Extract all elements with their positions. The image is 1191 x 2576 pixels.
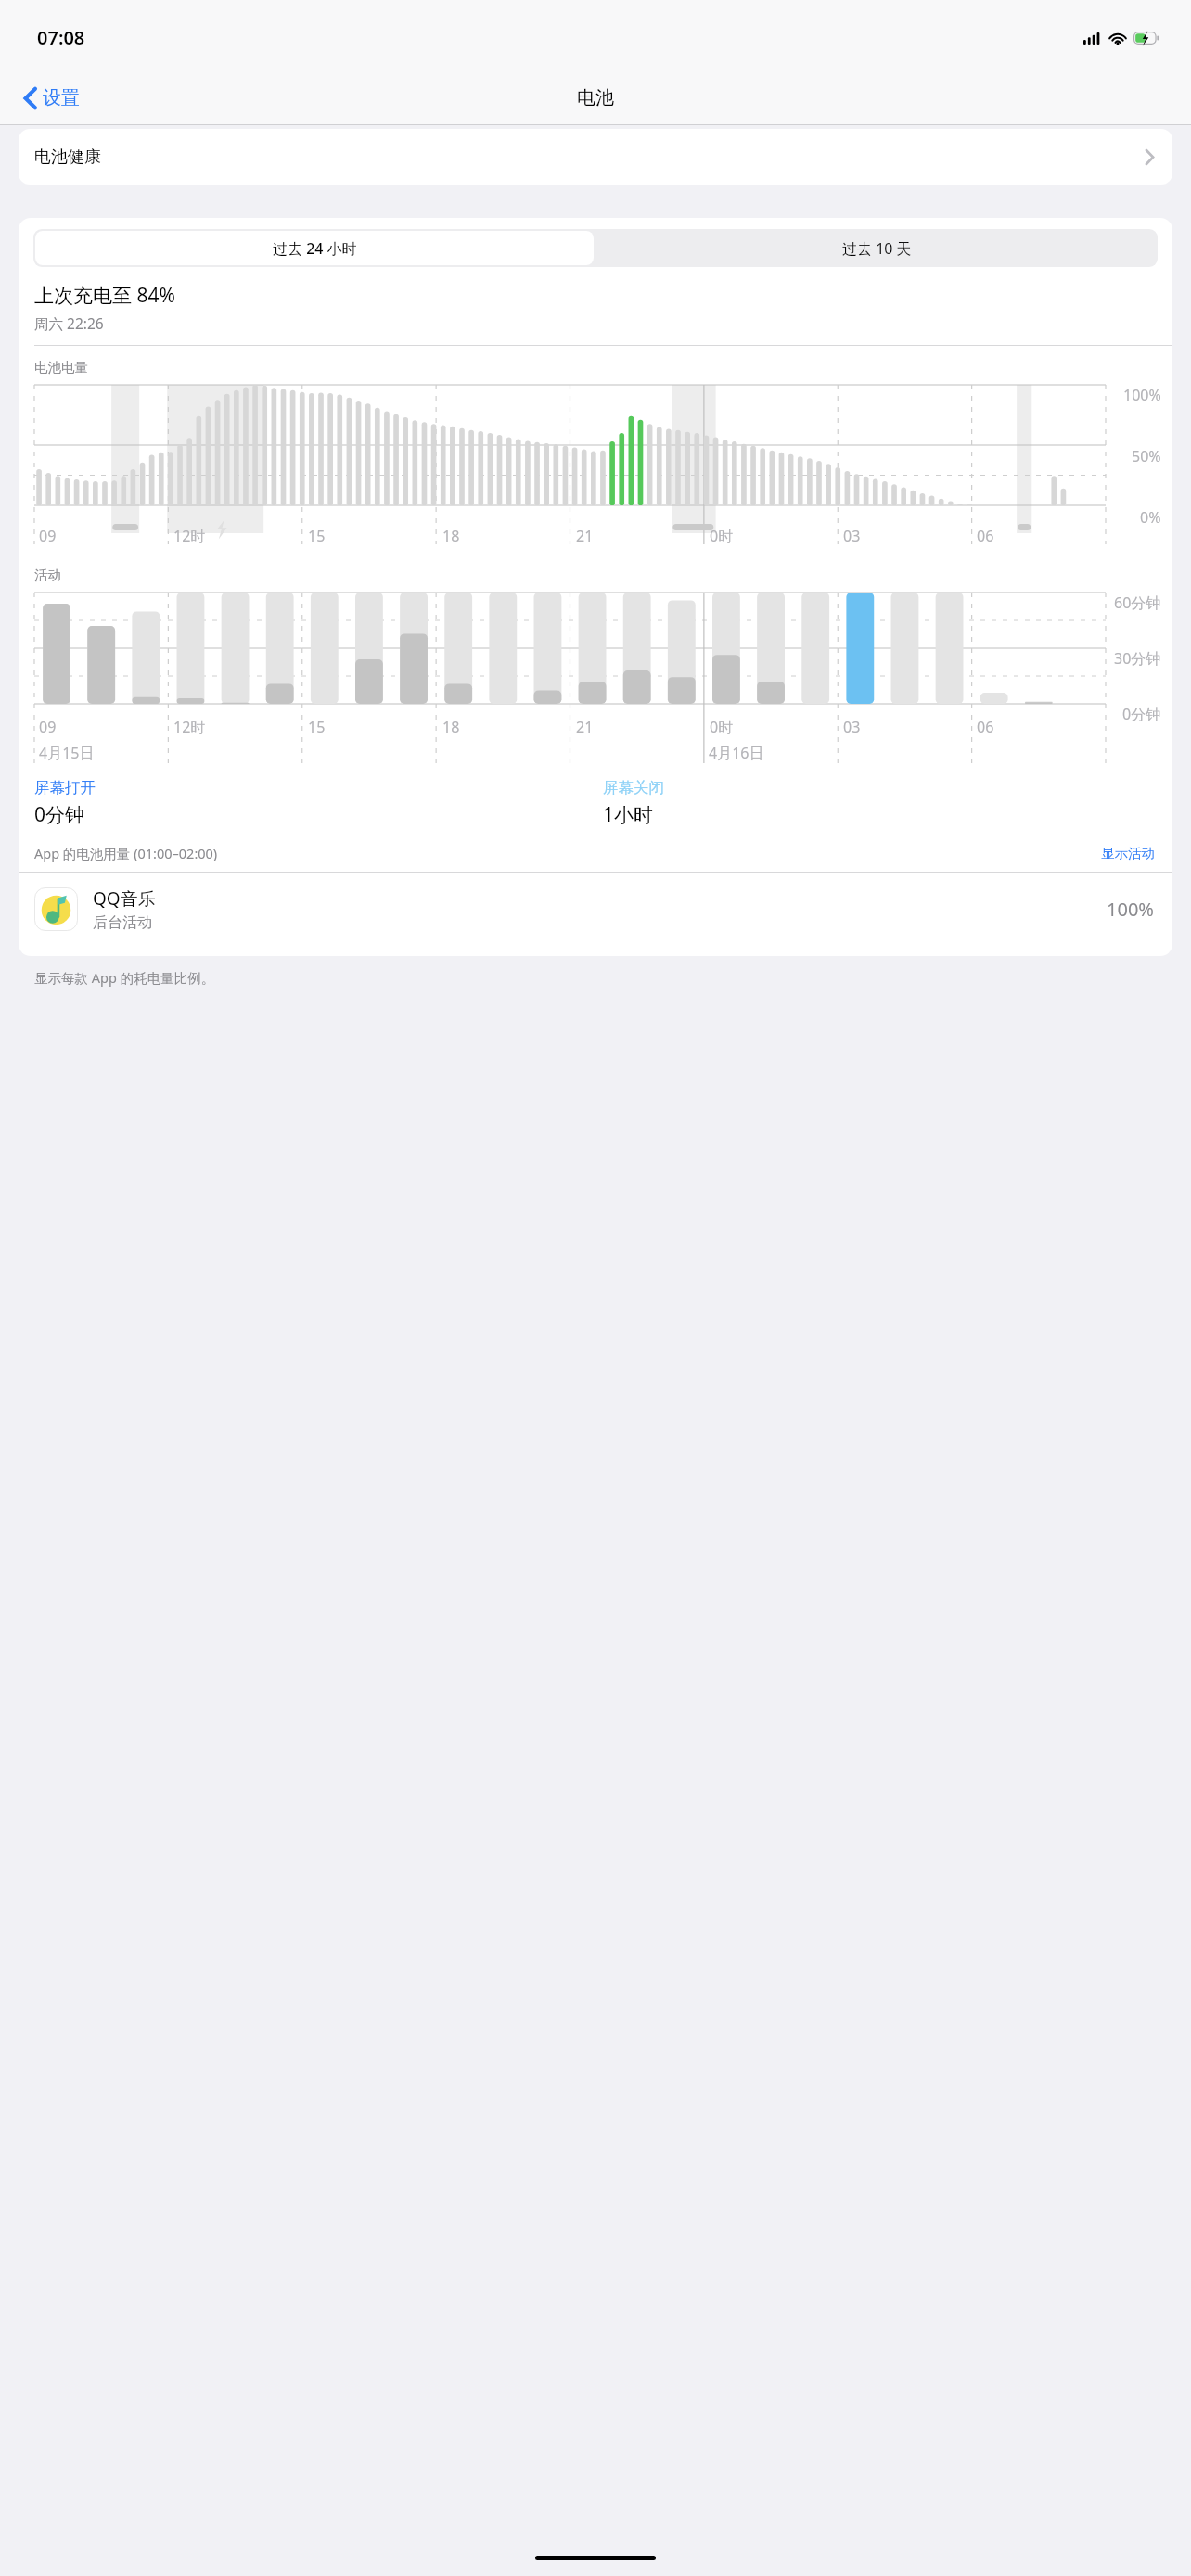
staticText: 06 (977, 526, 994, 546)
staticText: 上次充电至 84% (34, 282, 175, 309)
staticText: 周六 22:26 (34, 313, 104, 333)
staticText: 电池电量 (34, 359, 88, 376)
staticText: 0时 (710, 526, 734, 546)
staticText: 后台活动 (93, 913, 152, 932)
staticText: 15 (308, 526, 326, 546)
staticText: 过去 24 小时 (273, 238, 357, 259)
button[interactable]: QQ音乐 (19, 873, 1172, 945)
staticText: 21 (576, 717, 594, 737)
staticText: 100% (1123, 385, 1161, 405)
button[interactable]: 过去 10 天 (595, 229, 1158, 267)
staticText: 活动 (34, 567, 61, 583)
staticText: 屏幕打开 (34, 778, 96, 797)
staticText: 09 (39, 717, 57, 737)
staticText: App 的电池用量 (01:00–02:00) (34, 844, 218, 862)
staticText: 30分钟 (1114, 648, 1161, 669)
staticText: 100% (1107, 897, 1154, 922)
staticText: 显示每款 App 的耗电量比例。 (34, 968, 215, 987)
staticText: 09 (39, 526, 57, 546)
staticText: 03 (843, 526, 861, 546)
staticText: 屏幕关闭 (603, 778, 664, 797)
button[interactable]: 过去 24 小时 (35, 231, 594, 265)
staticText: 15 (308, 717, 326, 737)
staticText: 设置 (43, 86, 80, 109)
staticText: 4月16日 (709, 743, 764, 763)
staticText: 50% (1132, 446, 1161, 466)
staticText: 12时 (173, 717, 206, 737)
staticText: 60分钟 (1114, 593, 1161, 613)
staticText: 12时 (173, 526, 206, 546)
button[interactable]: 电池健康 (19, 129, 1172, 185)
staticText: QQ音乐 (93, 886, 156, 911)
staticText: 0% (1140, 507, 1161, 528)
staticText: 显示活动 (1101, 845, 1155, 861)
staticText: 18 (442, 526, 460, 546)
staticText: 0时 (710, 717, 734, 737)
staticText: 06 (977, 717, 994, 737)
staticText: 21 (576, 526, 594, 546)
button[interactable]: 设置 (19, 81, 85, 115)
staticText: 07:08 (37, 25, 85, 50)
staticText: 18 (442, 717, 460, 737)
staticText: 1小时 (603, 801, 654, 828)
staticText: 4月15日 (39, 743, 95, 763)
staticText: 03 (843, 717, 861, 737)
staticText: 过去 10 天 (842, 238, 912, 259)
staticText: 电池健康 (34, 147, 101, 168)
button[interactable]: 显示活动 (1099, 843, 1157, 863)
staticText: 0分钟 (1122, 704, 1161, 724)
staticText: 0分钟 (34, 801, 85, 828)
staticText: 电池 (577, 86, 614, 109)
